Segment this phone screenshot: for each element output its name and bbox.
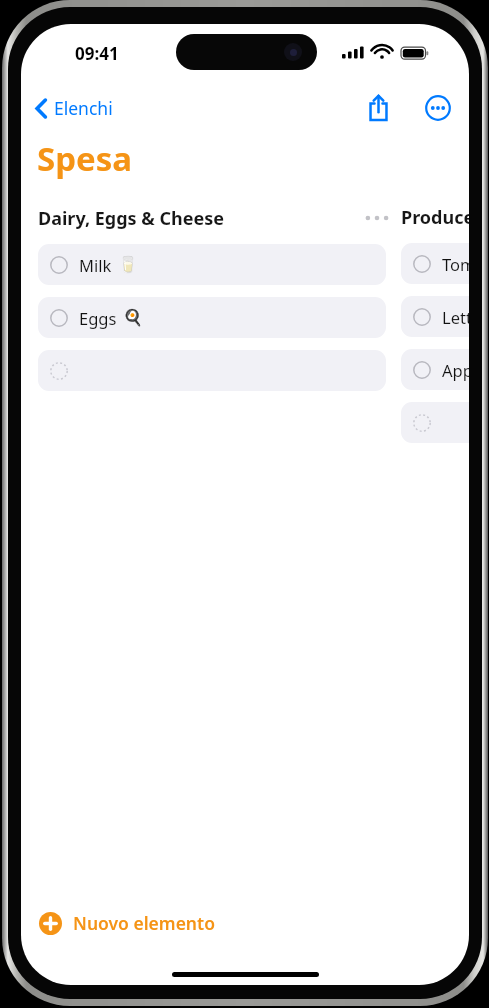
button[interactable]: Elenchi xyxy=(29,90,119,126)
button[interactable]: Eggs xyxy=(38,297,386,338)
staticText: 🥛 xyxy=(118,255,138,274)
button[interactable]: Lettuce xyxy=(401,296,469,337)
button[interactable]: Add item xyxy=(401,402,469,443)
staticText: Nuovo elemento xyxy=(73,911,215,935)
button[interactable]: Share xyxy=(358,88,398,128)
button[interactable]: More options xyxy=(418,88,458,128)
staticText: 🍳 xyxy=(123,308,143,327)
staticText: Eggs xyxy=(79,307,117,329)
button[interactable]: Section options xyxy=(361,205,393,231)
staticText: Elenchi xyxy=(54,96,113,120)
staticText: Milk xyxy=(79,254,112,276)
staticText: Produce xyxy=(401,205,469,230)
button[interactable]: Apples xyxy=(401,349,469,390)
button[interactable]: Milk xyxy=(38,244,386,285)
button[interactable]: Tomatoes xyxy=(401,243,469,284)
staticText: Tomatoes xyxy=(442,253,469,275)
button[interactable]: Nuovo elemento xyxy=(35,904,219,942)
staticText: Apples xyxy=(442,359,469,381)
staticText: Lettuce xyxy=(442,306,469,328)
staticText: 09:41 xyxy=(75,42,119,65)
staticText: Dairy, Eggs & Cheese xyxy=(38,206,225,231)
staticText: Spesa xyxy=(37,136,133,181)
